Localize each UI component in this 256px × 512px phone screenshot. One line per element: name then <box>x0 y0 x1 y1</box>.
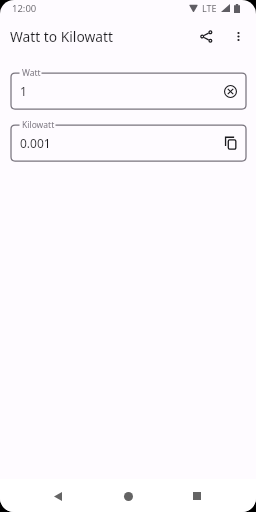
button[interactable]: Share <box>193 22 221 50</box>
button[interactable]: Watt <box>11 65 246 109</box>
staticText: Kilowatt <box>22 119 55 131</box>
staticText: 1 <box>20 83 27 99</box>
button[interactable]: Home <box>114 482 142 510</box>
staticText: 0.001 <box>20 135 51 151</box>
staticText: 12:00 <box>12 2 37 15</box>
button[interactable]: Kilowatt <box>11 117 246 161</box>
staticText: Watt to Kilowatt <box>10 27 114 46</box>
button[interactable]: Recents <box>183 482 211 510</box>
button[interactable]: Copy <box>217 130 243 156</box>
button[interactable]: Clear <box>217 78 243 104</box>
button[interactable]: More options <box>221 21 251 51</box>
button[interactable]: Back <box>44 482 72 510</box>
staticText: Watt <box>22 67 41 79</box>
staticText: LTE <box>202 2 217 14</box>
